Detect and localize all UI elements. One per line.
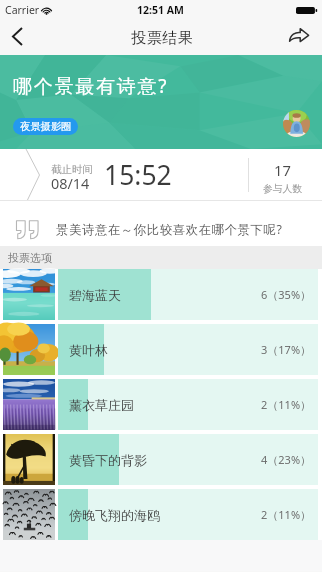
staticText: 3（17%） [261, 342, 312, 357]
staticText: 17 [274, 160, 291, 180]
staticText: 08/14 [51, 174, 90, 194]
button[interactable]: 傍晚飞翔的海鸥 [0, 489, 322, 540]
button[interactable]: Share [281, 18, 317, 51]
button[interactable]: 夜景摄影圈 [13, 118, 78, 135]
staticText: 6（35%） [261, 287, 312, 302]
staticText: 景美诗意在～你比较喜欢在哪个景下呢? [56, 221, 283, 238]
staticText: 黄昏下的背影 [69, 452, 147, 468]
staticText: 碧海蓝天 [69, 287, 121, 303]
staticText: 15:52 [104, 157, 172, 193]
staticText: 投票选项 [8, 251, 52, 265]
staticText: 投票结果 [131, 29, 193, 48]
staticText: Carrier [5, 3, 40, 17]
button[interactable]: 薰衣草庄园 [0, 379, 322, 430]
button[interactable]: 碧海蓝天 [0, 269, 322, 320]
staticText: 傍晚飞翔的海鸥 [69, 507, 160, 523]
button[interactable]: 黄昏下的背影 [0, 434, 322, 485]
staticText: 4（23%） [261, 452, 312, 467]
staticText: 2（11%） [261, 507, 312, 522]
staticText: 2（11%） [261, 397, 312, 412]
staticText: 12:51 AM [137, 3, 184, 17]
staticText: 参与人数 [263, 183, 303, 195]
staticText: 截止时间 [51, 163, 93, 176]
button[interactable]: Back [0, 20, 33, 53]
staticText: 薰衣草庄园 [69, 397, 134, 413]
button[interactable]: 黄叶林 [0, 324, 322, 375]
button[interactable]: Author avatar [283, 110, 310, 137]
staticText: 夜景摄影圈 [20, 120, 72, 133]
staticText: 黄叶林 [69, 342, 108, 358]
staticText: 哪个景最有诗意? [13, 73, 169, 99]
